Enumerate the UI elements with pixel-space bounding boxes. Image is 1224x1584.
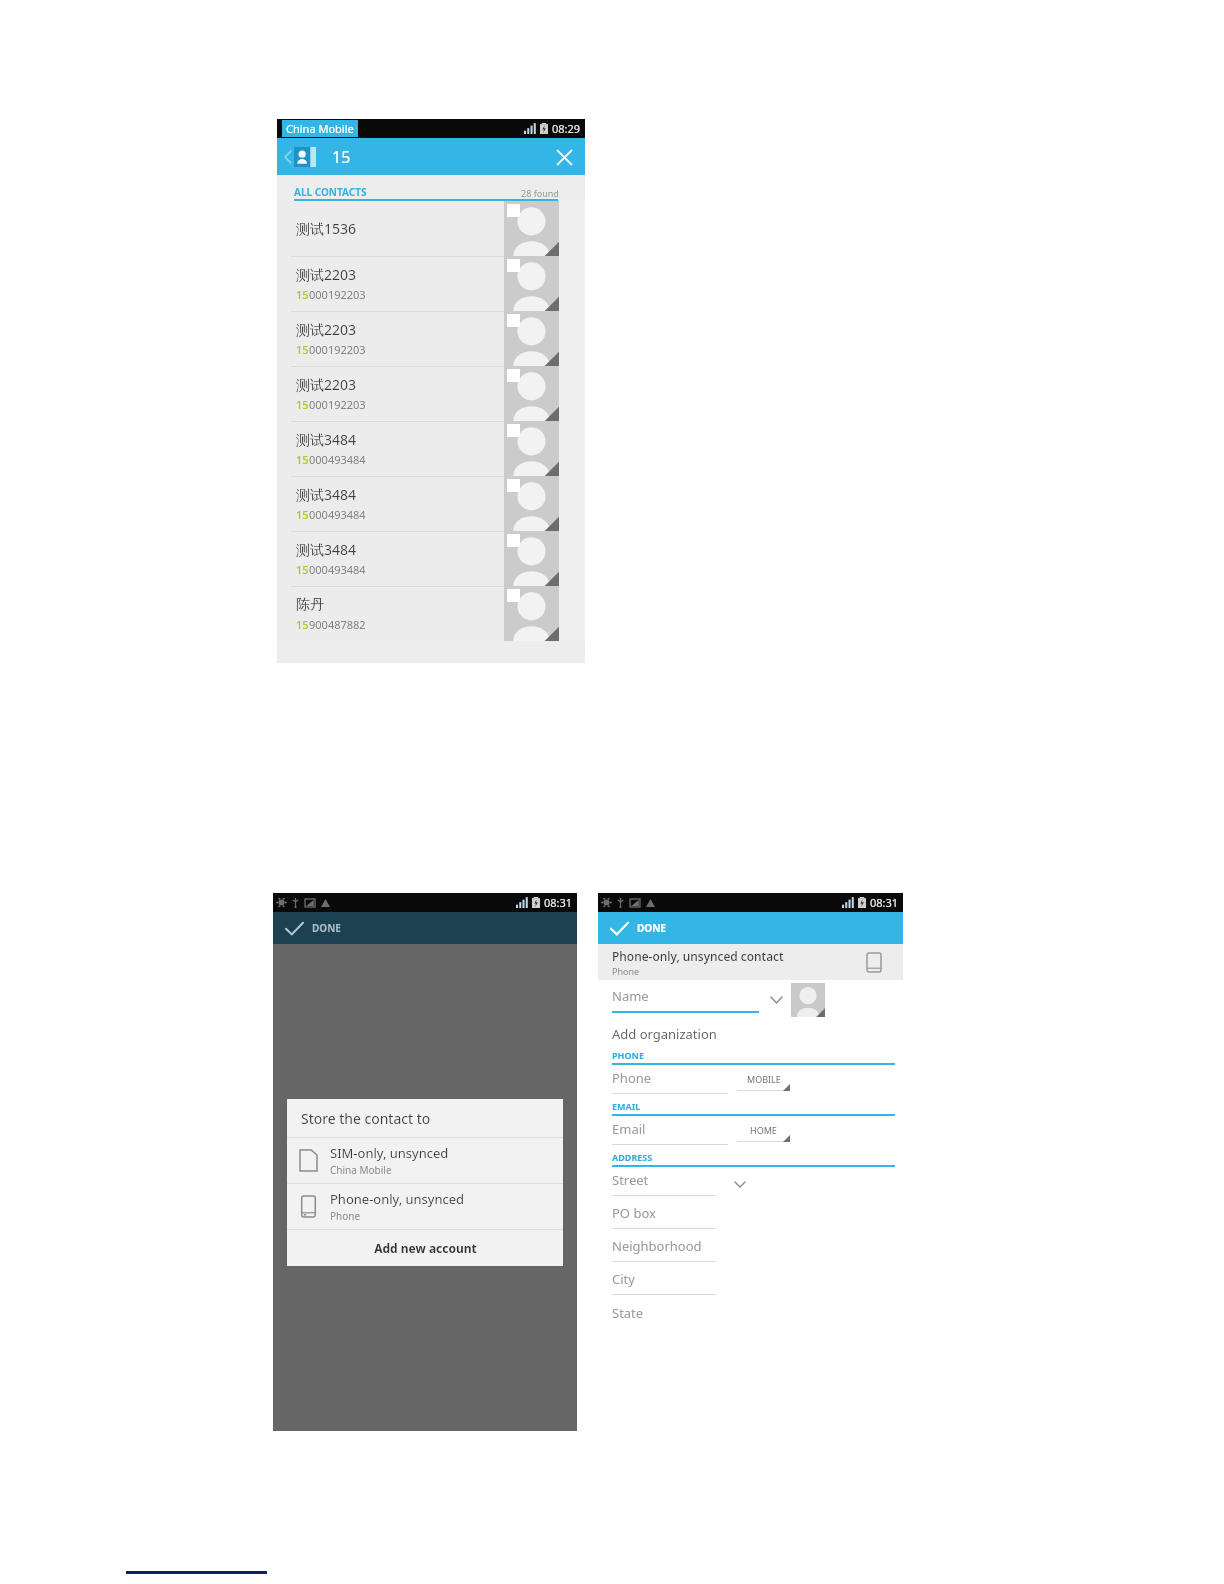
button[interactable]: Close selection xyxy=(549,142,579,172)
staticText: SIM-only, unsynced xyxy=(330,1144,449,1162)
button[interactable]: Street xyxy=(612,1171,716,1196)
staticText: EMAIL xyxy=(612,1100,641,1112)
staticText: 000192203 xyxy=(309,342,366,357)
staticText: Phone xyxy=(612,1069,652,1087)
button[interactable]: 陈丹 xyxy=(277,586,585,641)
button[interactable]: 测试1536 xyxy=(277,201,585,256)
button[interactable]: 测试2203 xyxy=(277,366,585,421)
staticText: 28 found xyxy=(521,187,559,199)
button[interactable]: 测试3484 xyxy=(277,421,585,476)
staticText: 测试3484 xyxy=(296,540,357,559)
staticText: MOBILE xyxy=(747,1073,781,1085)
button[interactable]: State xyxy=(612,1304,716,1328)
button[interactable]: 测试2203 xyxy=(277,256,585,311)
staticText: PO box xyxy=(612,1204,656,1222)
staticText: 900487882 xyxy=(309,617,366,632)
staticText: China Mobile xyxy=(330,1163,392,1177)
staticText: 测试3484 xyxy=(296,430,357,449)
staticText: 000493484 xyxy=(309,452,366,467)
staticText: 000192203 xyxy=(309,397,366,412)
staticText: DONE xyxy=(312,921,341,935)
staticText: State xyxy=(612,1304,644,1322)
staticText: Add organization xyxy=(612,1025,717,1043)
button[interactable]: SIM-only, unsynced xyxy=(287,1138,563,1183)
button[interactable]: DONE xyxy=(611,921,672,935)
button[interactable]: 测试3484 xyxy=(277,531,585,586)
staticText: 测试2203 xyxy=(296,265,357,284)
staticText: 15 xyxy=(296,507,309,522)
staticText: Name xyxy=(612,987,649,1005)
staticText: 000493484 xyxy=(309,562,366,577)
staticText: 陈丹 xyxy=(296,596,324,614)
button[interactable]: Back to contacts xyxy=(283,147,318,167)
staticText: 测试2203 xyxy=(296,375,357,394)
button[interactable]: HOME xyxy=(737,1124,790,1142)
staticText: 08:29 xyxy=(552,121,581,136)
staticText: 15 xyxy=(332,146,351,168)
button[interactable]: Email xyxy=(612,1120,728,1145)
staticText: ALL CONTACTS xyxy=(294,185,367,199)
button[interactable]: Add new account xyxy=(287,1230,563,1266)
button[interactable]: DONE xyxy=(286,921,347,935)
button[interactable]: Phone-only, unsynced contact xyxy=(598,944,903,980)
button[interactable]: Expand name fields xyxy=(767,991,785,1009)
staticText: Phone-only, unsynced xyxy=(330,1190,465,1208)
staticText: Store the contact to xyxy=(301,1109,431,1128)
staticText: HOME xyxy=(750,1124,777,1136)
staticText: Street xyxy=(612,1171,649,1189)
staticText: City xyxy=(612,1270,635,1288)
staticText: Phone xyxy=(612,965,640,977)
staticText: 测试1536 xyxy=(296,219,357,238)
staticText: PHONE xyxy=(612,1049,644,1061)
staticText: 15 xyxy=(296,617,309,632)
staticText: Email xyxy=(612,1120,646,1138)
staticText: Neighborhood xyxy=(612,1237,702,1255)
staticText: Phone xyxy=(330,1209,361,1223)
button[interactable]: Neighborhood xyxy=(612,1237,716,1262)
button[interactable]: Name xyxy=(612,987,759,1013)
button[interactable]: City xyxy=(612,1270,716,1295)
button[interactable]: Phone-only, unsynced xyxy=(287,1184,563,1229)
staticText: 测试3484 xyxy=(296,485,357,504)
staticText: 15 xyxy=(296,397,309,412)
staticText: 000493484 xyxy=(309,507,366,522)
staticText: China Mobile xyxy=(286,121,354,136)
button[interactable]: Expand address type xyxy=(732,1176,748,1192)
staticText: 08:31 xyxy=(544,895,573,910)
button[interactable]: Phone xyxy=(612,1069,728,1094)
button[interactable]: Add contact photo xyxy=(791,983,825,1017)
button[interactable]: 测试3484 xyxy=(277,476,585,531)
button[interactable]: PO box xyxy=(612,1204,716,1229)
staticText: ADDRESS xyxy=(612,1151,653,1163)
button[interactable]: MOBILE xyxy=(737,1073,790,1091)
staticText: Phone-only, unsynced contact xyxy=(612,948,784,964)
button[interactable]: 测试2203 xyxy=(277,311,585,366)
staticText: 000192203 xyxy=(309,287,366,302)
staticText: 15 xyxy=(296,342,309,357)
button[interactable]: Add organization xyxy=(598,1020,903,1047)
staticText: 15 xyxy=(296,287,309,302)
staticText: Add new account xyxy=(374,1240,477,1256)
staticText: DONE xyxy=(637,921,666,935)
staticText: 测试2203 xyxy=(296,320,357,339)
staticText: 15 xyxy=(296,452,309,467)
staticText: 15 xyxy=(296,562,309,577)
staticText: 08:31 xyxy=(870,895,899,910)
